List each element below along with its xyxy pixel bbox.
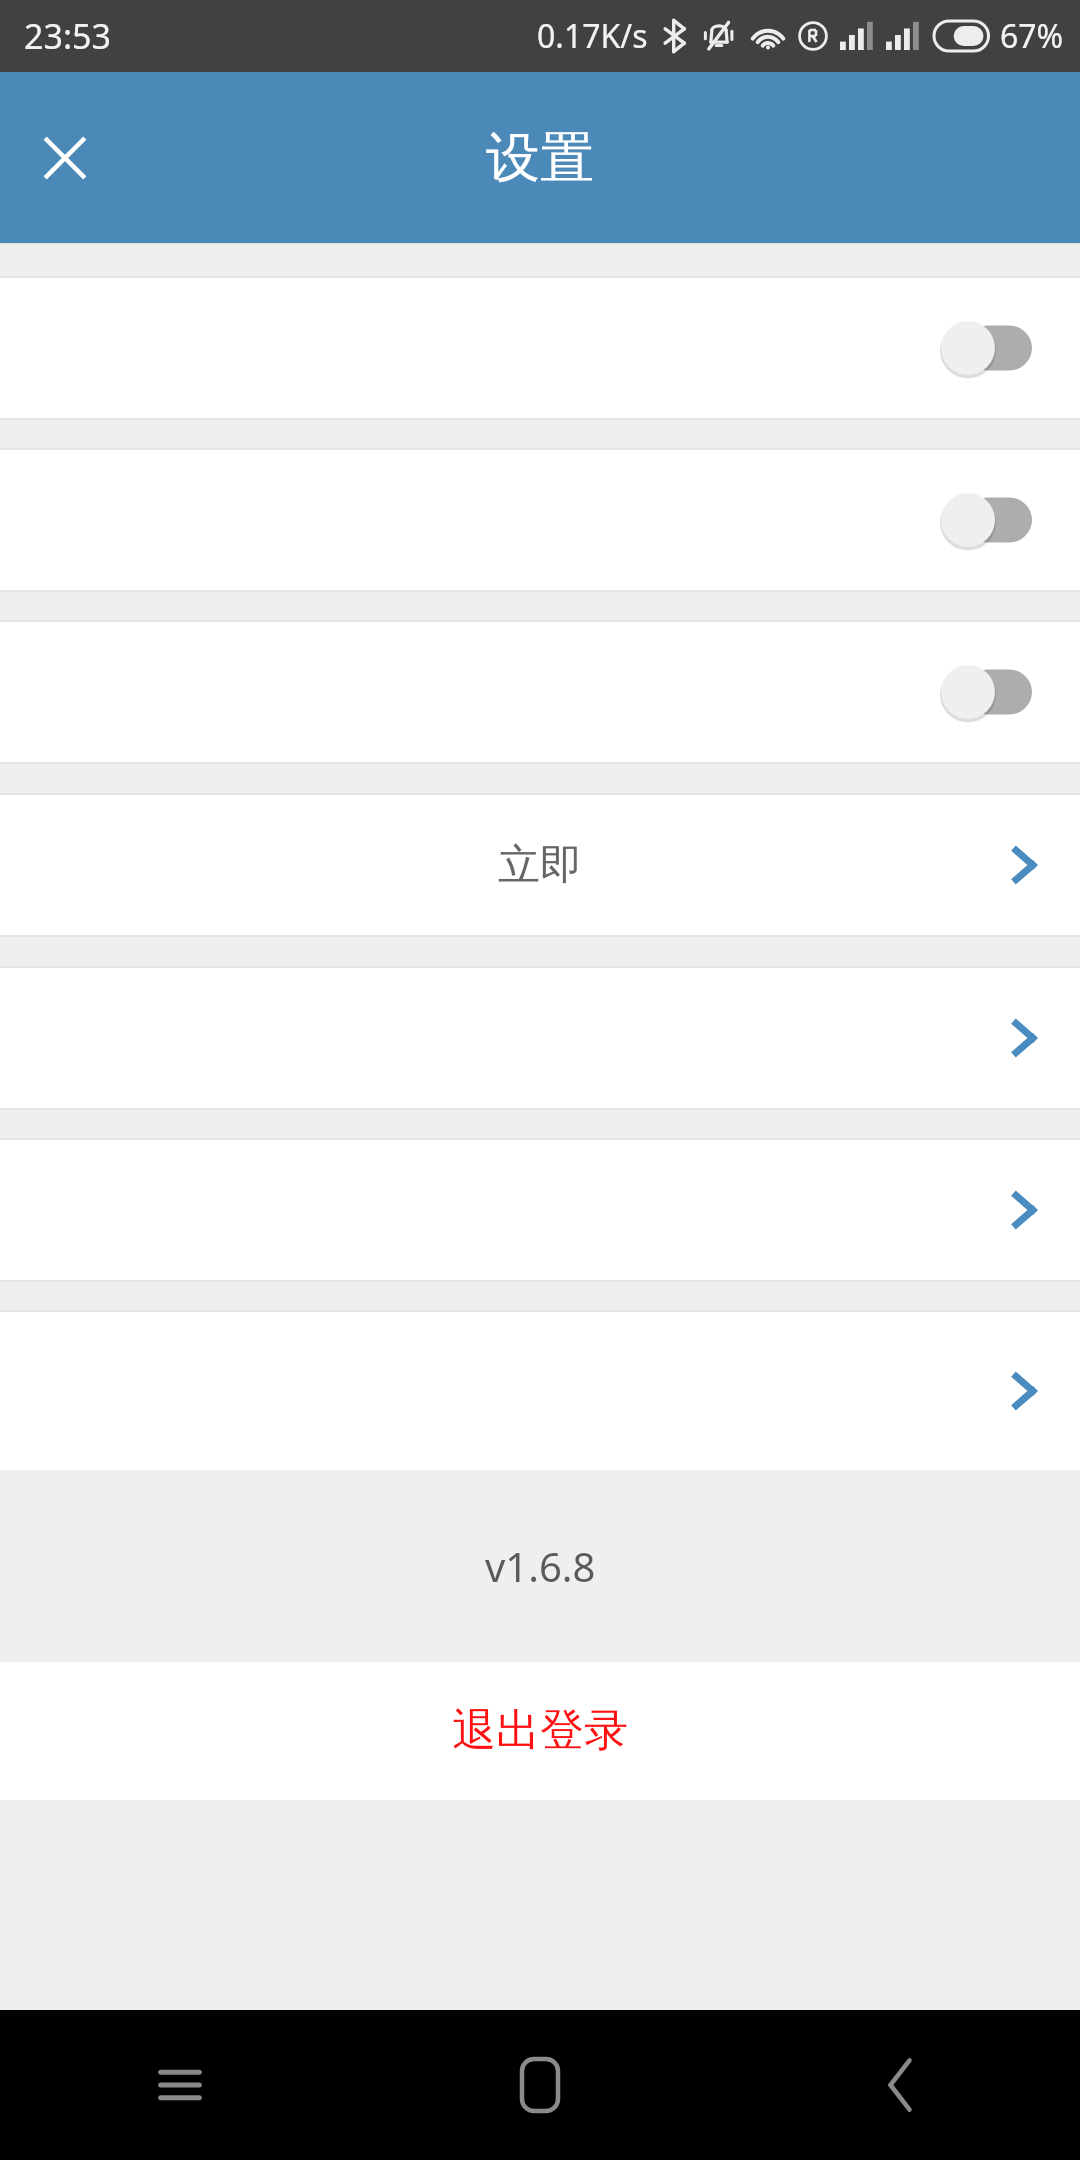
- button[interactable]: Open: [0, 1312, 1080, 1470]
- button[interactable]: Home: [360, 2010, 720, 2160]
- button[interactable]: Toggle: [0, 622, 1080, 762]
- button[interactable]: 退出登录: [0, 1662, 1080, 1800]
- button[interactable]: Toggle: [0, 450, 1080, 590]
- other: Toggle: [940, 664, 1032, 720]
- other: Toggle: [940, 492, 1032, 548]
- staticText: 23:53: [24, 13, 111, 59]
- button[interactable]: Menu: [0, 2010, 360, 2160]
- button[interactable]: 立即: [0, 795, 1080, 935]
- button[interactable]: Back: [720, 2010, 1080, 2160]
- staticText: 0.17K/s: [537, 14, 648, 58]
- other: Open: [996, 1010, 1052, 1066]
- other: Toggle: [940, 320, 1032, 376]
- other: Open: [996, 1182, 1052, 1238]
- staticText: 立即: [498, 839, 582, 892]
- other: Open: [996, 837, 1052, 893]
- button[interactable]: Open: [0, 968, 1080, 1108]
- other: Open: [996, 1363, 1052, 1419]
- staticText: 设置: [486, 124, 594, 192]
- button[interactable]: Toggle: [0, 278, 1080, 418]
- staticText: 67%: [1000, 14, 1064, 58]
- button[interactable]: Open: [0, 1140, 1080, 1280]
- staticText: 退出登录: [452, 1703, 628, 1758]
- button[interactable]: Close: [20, 113, 110, 203]
- staticText: v1.6.8: [485, 1539, 596, 1593]
